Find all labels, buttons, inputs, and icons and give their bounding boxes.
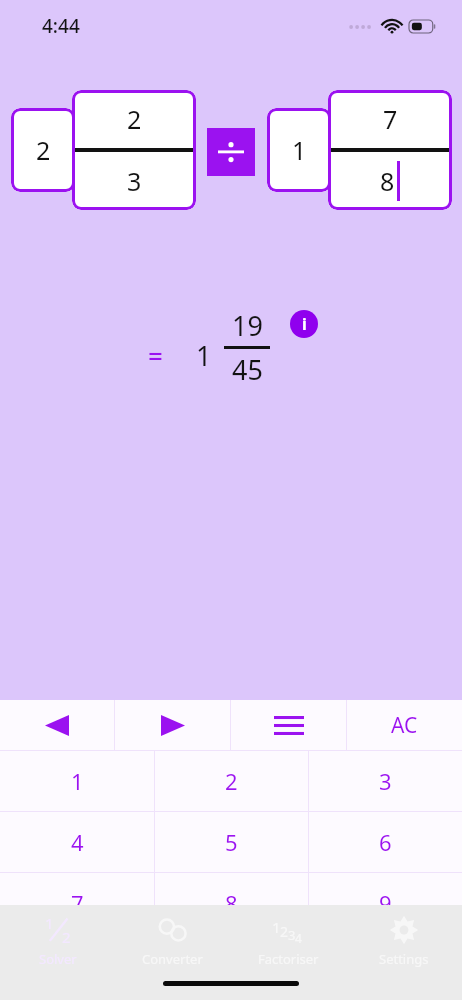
staticText: 19 [232,307,263,344]
staticText: Factoriser [258,950,319,968]
staticText: 4 [71,827,84,857]
staticText: AC [391,711,418,740]
staticText: 7 [383,102,398,136]
button[interactable]: Previous [0,700,114,750]
staticText: 9 [379,888,392,918]
staticText: 3 [127,164,142,198]
button[interactable]: 4 [0,812,154,872]
staticText: 1 [196,337,212,374]
button[interactable]: 2 [155,751,308,811]
staticText: 1 [71,766,84,796]
staticText: 8 [380,164,395,198]
button[interactable]: 7 [0,873,154,933]
staticText: 1 [292,133,307,167]
staticText: 8 [225,888,238,918]
button[interactable]: 3 [309,751,462,811]
button[interactable]: 8 [155,873,308,933]
staticText: 2 [225,766,238,796]
staticText: = [148,337,163,372]
button[interactable]: 1 [267,108,331,192]
staticText: 7 [71,888,84,918]
button[interactable]: Divide [207,128,255,176]
staticText: 2 [127,102,142,136]
button[interactable]: AC [347,700,462,750]
button[interactable]: 1 [0,905,115,975]
staticText: 4 [295,930,302,946]
staticText: 5 [225,827,238,857]
staticText: 6 [379,827,392,857]
staticText: 2 [36,133,51,167]
button[interactable]: 6 [309,812,462,872]
staticText: Converter [142,950,203,968]
button[interactable]: Next [115,700,230,750]
staticText: 3 [288,926,296,944]
staticText: 45 [232,351,263,388]
staticText: 1 [45,913,54,933]
button[interactable]: 9 [309,873,462,933]
button[interactable]: 5 [155,812,308,872]
button[interactable]: 2 [72,90,196,210]
staticText: 2 [62,927,71,947]
button[interactable]: Menu [231,700,346,750]
staticText: i [302,313,307,335]
staticText: Settings [379,950,429,968]
staticText: 1 [272,917,281,937]
button[interactable]: Info [290,310,318,338]
button[interactable]: 1 [0,751,154,811]
staticText: Solver [39,950,77,968]
button[interactable]: 0 [155,934,308,994]
button[interactable]: 2 [11,108,75,192]
button[interactable]: 7 [328,90,452,210]
staticText: 3 [379,766,392,796]
staticText: 4:44 [42,13,80,39]
staticText: 2 [280,922,289,941]
